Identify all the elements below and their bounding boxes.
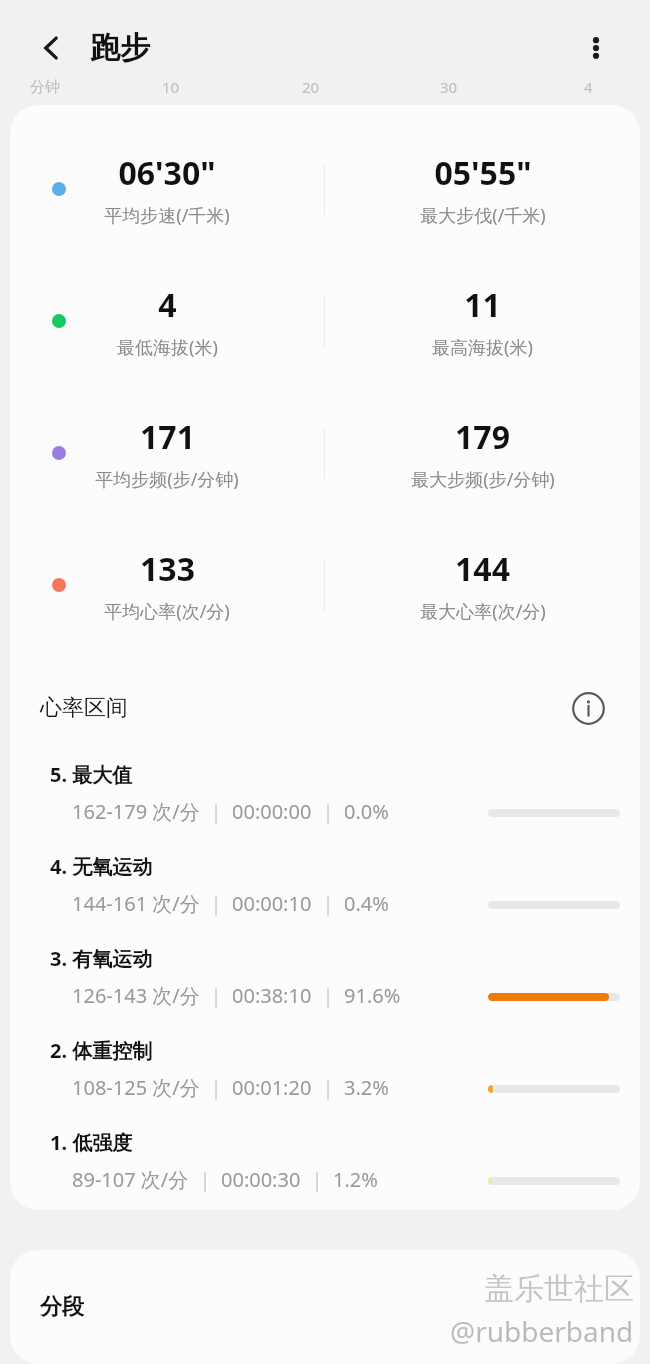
staticText: 0.4% — [344, 890, 389, 917]
staticText: 平均步频(步/分钟) — [95, 467, 239, 492]
staticText: 144-161 次/分 — [72, 890, 200, 917]
staticText: 最高海拔(米) — [432, 335, 533, 360]
button[interactable]: 2. 体重控制 — [10, 1023, 640, 1115]
staticText: 5. 最大值 — [50, 761, 133, 788]
staticText: | — [200, 982, 232, 1009]
staticText: | — [200, 798, 232, 825]
staticText: 06'30" — [118, 151, 216, 195]
staticText: | — [312, 798, 344, 825]
staticText: | — [312, 890, 344, 917]
button[interactable]: 5. 最大值 — [10, 747, 640, 839]
staticText: 171 — [140, 415, 195, 459]
staticText: 3.2% — [344, 1074, 389, 1101]
staticText: 00:38:10 — [232, 982, 312, 1009]
button[interactable]: 171 — [10, 387, 640, 519]
staticText: 20 — [302, 77, 320, 97]
staticText: 盖乐世社区 — [484, 1270, 634, 1308]
staticText: | — [200, 890, 232, 917]
staticText: 10 — [162, 77, 180, 97]
staticText: 4. 无氧运动 — [50, 853, 153, 880]
staticText: 00:00:30 — [221, 1166, 301, 1193]
button[interactable]: 4 — [10, 255, 640, 387]
staticText: 00:00:00 — [232, 798, 312, 825]
staticText: 89-107 次/分 — [72, 1166, 189, 1193]
staticText: | — [312, 982, 344, 1009]
staticText: 最大步频(步/分钟) — [411, 467, 555, 492]
staticText: 0.0% — [344, 798, 389, 825]
staticText: 2. 体重控制 — [50, 1037, 153, 1064]
staticText: | — [312, 1074, 344, 1101]
staticText: 4 — [158, 283, 177, 327]
staticText: 91.6% — [344, 982, 401, 1009]
staticText: | — [200, 1074, 232, 1101]
staticText: 162-179 次/分 — [72, 798, 200, 825]
staticText: 分段 — [40, 1293, 84, 1321]
staticText: 126-143 次/分 — [72, 982, 200, 1009]
button[interactable]: 3. 有氧运动 — [10, 931, 640, 1023]
staticText: 分钟 — [30, 78, 60, 97]
staticText: 最大步伐(/千米) — [420, 203, 546, 228]
staticText: | — [301, 1166, 333, 1193]
button[interactable]: 4. 无氧运动 — [10, 839, 640, 931]
staticText: | — [189, 1166, 221, 1193]
staticText: 最大心率(次/分) — [420, 599, 546, 624]
staticText: 179 — [455, 415, 510, 459]
staticText: 30 — [440, 77, 458, 97]
staticText: 00:01:20 — [232, 1074, 312, 1101]
button[interactable]: 分段 — [10, 1250, 640, 1364]
staticText: 144 — [455, 547, 510, 591]
staticText: 平均步速(/千米) — [104, 203, 230, 228]
staticText: 跑步 — [90, 29, 150, 67]
button[interactable]: Back — [30, 26, 74, 70]
staticText: 00:00:10 — [232, 890, 312, 917]
button[interactable]: 06'30" — [10, 123, 640, 255]
staticText: 1. 低强度 — [50, 1129, 133, 1156]
button[interactable]: More options — [574, 26, 618, 70]
staticText: 4 — [584, 77, 593, 97]
staticText: 心率区间 — [40, 694, 128, 722]
staticText: 05'55" — [434, 151, 532, 195]
button[interactable]: 133 — [10, 519, 640, 651]
staticText: 平均心率(次/分) — [104, 599, 230, 624]
staticText: 108-125 次/分 — [72, 1074, 200, 1101]
button[interactable]: 1. 低强度 — [10, 1115, 640, 1207]
staticText: 最低海拔(米) — [117, 335, 218, 360]
staticText: @rubberband — [450, 1312, 634, 1350]
staticText: 133 — [140, 547, 195, 591]
staticText: 3. 有氧运动 — [50, 945, 153, 972]
button[interactable]: Heart rate zone info — [566, 686, 610, 730]
staticText: 1.2% — [333, 1166, 378, 1193]
staticText: 11 — [464, 283, 501, 327]
